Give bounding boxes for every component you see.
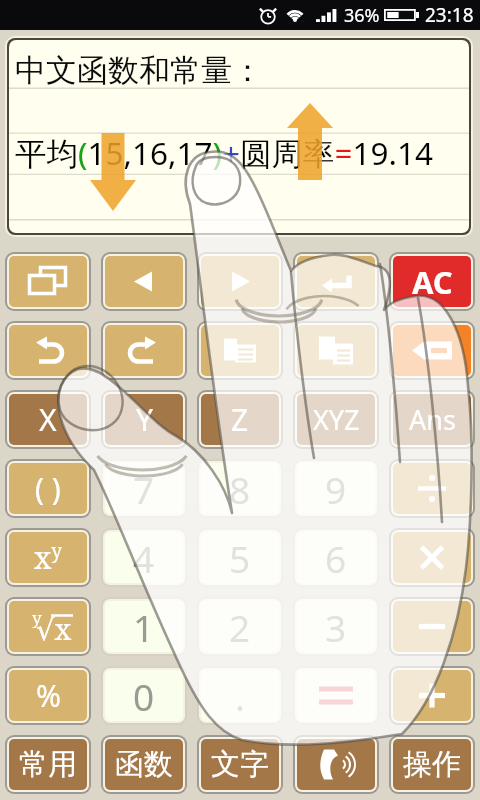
staticText: ( ) xyxy=(35,468,61,509)
button[interactable]: XYZ xyxy=(297,394,375,445)
button[interactable]: xy xyxy=(9,532,87,583)
staticText: 23:18 xyxy=(425,2,474,28)
button[interactable]: Backspace xyxy=(393,325,471,376)
staticText: 4 xyxy=(133,533,155,583)
button[interactable]: Minus xyxy=(393,601,471,652)
button[interactable]: 函数 xyxy=(105,739,183,790)
button[interactable]: Speak xyxy=(297,739,375,790)
staticText: 操作 xyxy=(403,746,461,783)
staticText: % xyxy=(36,675,61,716)
staticText: 6 xyxy=(325,533,347,583)
button[interactable]: 9 xyxy=(297,463,375,514)
button[interactable]: Enter xyxy=(297,256,375,307)
staticText: 3 xyxy=(325,602,347,652)
button[interactable]: Z xyxy=(201,394,279,445)
button[interactable]: Left xyxy=(105,256,183,307)
button[interactable]: ( ) xyxy=(9,463,87,514)
staticText: Y xyxy=(136,399,153,440)
staticText: √x xyxy=(36,609,72,648)
staticText: 9 xyxy=(325,464,347,514)
button[interactable]: % xyxy=(9,670,87,721)
staticText: 1 xyxy=(133,602,155,652)
staticText: . xyxy=(235,671,245,721)
button[interactable]: Plus xyxy=(393,670,471,721)
staticText: xy xyxy=(34,537,63,578)
staticText: X xyxy=(39,399,57,440)
button[interactable]: 3 xyxy=(297,601,375,652)
button[interactable]: Right xyxy=(201,256,279,307)
staticText: 5 xyxy=(229,533,251,583)
button[interactable]: Windows xyxy=(9,256,87,307)
staticText: 常用 xyxy=(19,746,77,783)
button[interactable]: Y xyxy=(105,394,183,445)
button[interactable]: AC xyxy=(393,256,471,307)
staticText: 2 xyxy=(229,602,251,652)
button[interactable]: 文字 xyxy=(201,739,279,790)
button[interactable]: Paste xyxy=(297,325,375,376)
button[interactable]: 2 xyxy=(201,601,279,652)
button[interactable]: Nth root xyxy=(9,601,87,652)
staticText: Ans xyxy=(409,401,456,438)
button[interactable]: Copy xyxy=(201,325,279,376)
button[interactable]: X xyxy=(9,394,87,445)
button[interactable]: Ans xyxy=(393,394,471,445)
button[interactable]: 5 xyxy=(201,532,279,583)
button[interactable]: Divide xyxy=(393,463,471,514)
staticText: 函数 xyxy=(115,746,173,783)
button[interactable]: 7 xyxy=(105,463,183,514)
button[interactable]: Redo xyxy=(105,325,183,376)
button[interactable]: 0 xyxy=(105,670,183,721)
staticText: XYZ xyxy=(313,401,360,438)
button[interactable]: 8 xyxy=(201,463,279,514)
staticText: 0 xyxy=(133,671,155,721)
staticText: 文字 xyxy=(211,746,269,783)
staticText: 36% xyxy=(344,3,380,28)
staticText: y xyxy=(32,606,42,629)
button[interactable]: Undo xyxy=(9,325,87,376)
button[interactable]: 4 xyxy=(105,532,183,583)
staticText: AC xyxy=(412,261,453,303)
button[interactable]: 常用 xyxy=(9,739,87,790)
staticText: 平均(15,16,17)+圆周率=19.14 xyxy=(15,131,433,174)
button[interactable]: 1 xyxy=(105,601,183,652)
staticText: Z xyxy=(231,399,249,440)
button[interactable]: 6 xyxy=(297,532,375,583)
staticText: 7 xyxy=(133,464,155,514)
staticText: 8 xyxy=(229,464,251,514)
staticText: 中文函数和常量： xyxy=(15,51,263,90)
button[interactable]: Multiply xyxy=(393,532,471,583)
button[interactable]: Equals xyxy=(297,670,375,721)
button[interactable]: 操作 xyxy=(393,739,471,790)
button[interactable]: . xyxy=(201,670,279,721)
